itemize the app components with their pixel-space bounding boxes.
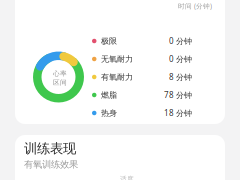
staticText: 训练表现 (24, 140, 76, 157)
staticText: 时间 (分钟) (178, 2, 212, 10)
staticText: 无氧耐力 (101, 54, 133, 64)
button[interactable]: 有氧耐力 (92, 68, 192, 86)
staticText: 区间 (53, 78, 67, 87)
staticText: 有氧训练效果 (24, 159, 78, 170)
staticText: 8 分钟 (169, 72, 192, 82)
button[interactable] (15, 135, 225, 180)
staticText: 78 分钟 (164, 90, 192, 100)
staticText: 适度 (120, 175, 134, 180)
button[interactable] (15, 0, 225, 124)
staticText: 热身 (101, 108, 117, 118)
staticText: 0 分钟 (169, 54, 192, 64)
staticText: 心率 (53, 69, 67, 77)
staticText: 极限 (101, 36, 117, 46)
staticText: 燃脂 (101, 90, 117, 100)
button[interactable]: 无氧耐力 (92, 50, 192, 68)
staticText: 18 分钟 (164, 108, 192, 118)
button[interactable]: 热身 (92, 104, 192, 122)
button[interactable]: 燃脂 (92, 86, 192, 104)
button[interactable]: 极限 (92, 32, 192, 50)
staticText: 0 分钟 (169, 36, 192, 46)
staticText: 有氧耐力 (101, 72, 133, 82)
